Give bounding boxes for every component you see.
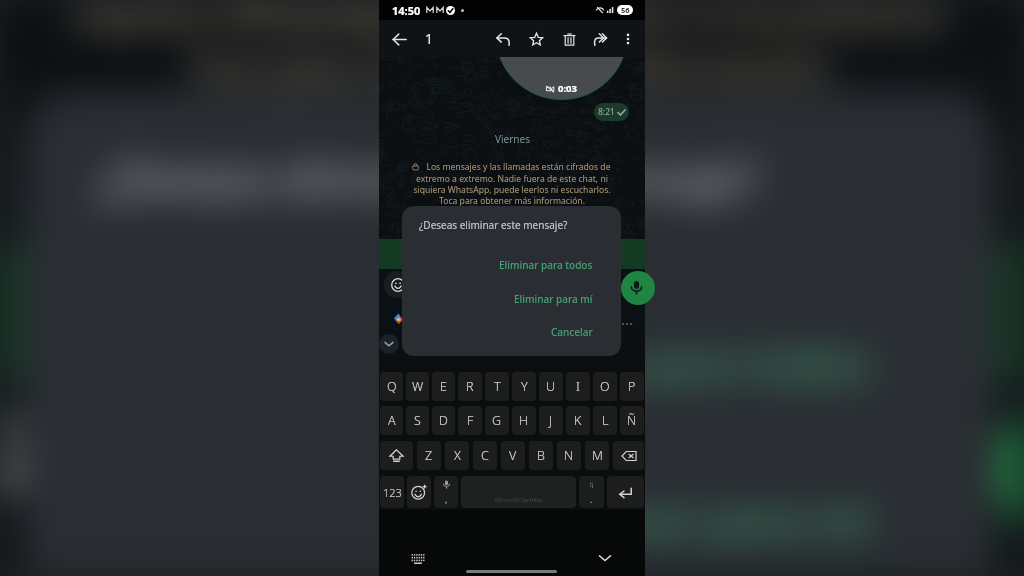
button[interactable]: 123 (380, 476, 404, 508)
staticText: L (602, 412, 609, 429)
staticText: B (537, 447, 545, 464)
button[interactable]: M (585, 441, 609, 470)
button[interactable]: U (539, 372, 563, 401)
button[interactable]: W (406, 372, 429, 401)
staticText: 0:03 (558, 82, 577, 95)
staticText: Microsoft SwiftKey (495, 496, 543, 503)
button[interactable]: Eliminar para todos (402, 254, 621, 275)
button[interactable]: S (406, 406, 429, 435)
button[interactable]: V (501, 441, 525, 470)
staticText: 56 (621, 5, 630, 15)
button[interactable]: T (485, 372, 509, 401)
button[interactable]: Back (388, 28, 410, 50)
button[interactable]: E (432, 372, 455, 401)
staticText: Los mensajes y las llamadas están cifrad… (405, 161, 619, 206)
button[interactable]: !¡ (579, 476, 604, 508)
staticText: T (494, 378, 501, 395)
button[interactable]: O (593, 372, 617, 401)
staticText: Eliminar para mí (514, 292, 593, 306)
staticText: V (509, 447, 517, 464)
button[interactable]: Record voice message (997, 390, 1024, 548)
staticText: Eliminar para mí (521, 487, 872, 552)
button[interactable]: A (380, 406, 403, 435)
staticText: D (439, 412, 448, 429)
button[interactable]: Cancelar (402, 321, 621, 342)
staticText: K (574, 412, 582, 429)
staticText: Z (425, 447, 433, 464)
button[interactable]: Z (417, 441, 441, 470)
staticText: , (445, 493, 448, 505)
button[interactable]: Record voice message (621, 271, 655, 305)
button[interactable]: More options (617, 28, 639, 50)
staticText: . (590, 493, 593, 505)
staticText: ¿Deseas eliminar este mensaje? (419, 218, 568, 232)
button[interactable]: Enter (607, 476, 644, 508)
staticText: H (519, 412, 529, 429)
staticText: I (576, 378, 580, 395)
staticText: F (467, 412, 474, 429)
button[interactable]: F (458, 406, 482, 435)
staticText: R (466, 378, 474, 395)
staticText: X (454, 447, 461, 464)
button[interactable]: P (620, 372, 644, 401)
staticText: A (388, 412, 396, 429)
button[interactable]: Eliminar para mí (402, 288, 621, 309)
button[interactable]: B (529, 441, 553, 470)
staticText: Q (387, 378, 397, 395)
button[interactable]: Voice input (434, 476, 458, 508)
button[interactable]: Emoji (407, 476, 431, 508)
staticText: Los mensajes y las llamadas están cifrad… (36, 0, 988, 90)
button[interactable]: I (566, 372, 590, 401)
button[interactable]: Forward (589, 27, 613, 51)
button[interactable]: G (485, 406, 509, 435)
staticText: Ñ (627, 412, 637, 429)
staticText: M (592, 447, 603, 464)
staticText: S (414, 412, 421, 429)
staticText: 1 (425, 29, 434, 48)
staticText: Eliminar para todos (454, 330, 872, 395)
button[interactable]: Y (512, 372, 536, 401)
staticText: W (412, 378, 424, 395)
staticText: C (481, 447, 489, 464)
button[interactable]: Switch keyboard (407, 547, 429, 569)
button[interactable]: Q (380, 372, 403, 401)
staticText: 14:50 (392, 3, 421, 18)
button[interactable]: Reply (491, 27, 515, 51)
staticText: Cancelar (551, 325, 593, 339)
button[interactable]: Scroll to bottom (379, 334, 399, 354)
button[interactable]: Microsoft SwiftKey (461, 476, 576, 508)
button[interactable]: Delete (557, 27, 581, 51)
staticText: 123 (383, 485, 402, 500)
button[interactable]: N (557, 441, 581, 470)
staticText: E (440, 378, 447, 395)
staticText: J (549, 412, 553, 429)
button[interactable]: Star (524, 27, 548, 51)
staticText: U (546, 378, 556, 395)
button[interactable]: Shift (380, 441, 413, 470)
button[interactable]: Emoji (384, 271, 411, 298)
button[interactable]: J (539, 406, 563, 435)
button[interactable]: X (445, 441, 469, 470)
button[interactable]: Eliminar para mí (22, 469, 997, 566)
staticText: Eliminar para todos (499, 258, 593, 272)
button[interactable]: D (432, 406, 455, 435)
button[interactable]: C (473, 441, 497, 470)
button[interactable]: Emoji (0, 390, 63, 515)
staticText: ¿Deseas eliminar este mensaje? (98, 146, 761, 210)
staticText: O (600, 378, 610, 395)
button[interactable]: R (458, 372, 482, 401)
button[interactable]: L (593, 406, 617, 435)
button[interactable]: Ñ (620, 406, 644, 435)
staticText: Y (521, 378, 528, 395)
button[interactable]: H (512, 406, 536, 435)
staticText: Viernes (495, 132, 530, 146)
staticText: 8:21 (598, 106, 615, 118)
staticText: N (564, 447, 574, 464)
button[interactable]: Eliminar para todos (22, 312, 997, 409)
staticText: P (628, 378, 636, 395)
button[interactable]: Hide keyboard (594, 547, 616, 569)
staticText: !¡ (590, 480, 594, 489)
staticText: G (492, 412, 502, 429)
button[interactable]: Backspace (613, 441, 644, 470)
button[interactable]: K (566, 406, 590, 435)
